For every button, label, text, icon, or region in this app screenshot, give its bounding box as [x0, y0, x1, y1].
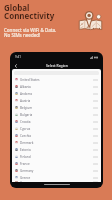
staticText: Andorra: [20, 92, 32, 96]
button[interactable]: Finland: [12, 153, 101, 160]
staticText: United States: [20, 78, 40, 82]
staticText: Denmark: [20, 141, 34, 145]
staticText: Croatia: [20, 120, 31, 124]
button[interactable]: Belgium: [12, 104, 101, 111]
staticText: Greece: [20, 176, 31, 180]
button[interactable]: Bulgaria: [12, 111, 101, 118]
button[interactable]: France: [12, 160, 101, 167]
staticText: Hungary: [20, 181, 33, 182]
staticText: Austria: [20, 99, 31, 103]
button[interactable]: Back: [12, 62, 19, 69]
staticText: Connect via WiFi & Data. No SIMs needed!: [4, 27, 57, 39]
button[interactable]: Croatia: [12, 118, 101, 125]
staticText: Albania: [20, 85, 31, 89]
staticText: Global Connectivity: [4, 2, 55, 21]
button[interactable]: Andorra: [12, 90, 101, 97]
button[interactable]: Germany: [12, 167, 101, 174]
button[interactable]: Cyprus: [12, 125, 101, 132]
button[interactable]: Estonia: [12, 146, 101, 153]
button[interactable]: Austria: [12, 97, 101, 104]
button[interactable]: Greece: [12, 174, 101, 181]
staticText: Finland: [20, 155, 31, 159]
staticText: Germany: [20, 169, 34, 173]
staticText: Belgium: [20, 106, 33, 110]
staticText: Cyprus: [20, 127, 31, 131]
staticText: France: [20, 162, 30, 166]
staticText: Czechia: [20, 134, 32, 138]
button[interactable]: Hungary: [12, 181, 101, 182]
button[interactable]: Denmark: [12, 139, 101, 146]
staticText: 9:41: [15, 55, 21, 59]
staticText: Estonia: [20, 148, 31, 152]
button[interactable]: Czechia: [12, 132, 101, 139]
button[interactable]: United States: [12, 76, 101, 83]
staticText: Bulgaria: [20, 113, 33, 117]
button[interactable]: Albania: [12, 83, 101, 90]
staticText: Select Region: [46, 63, 68, 68]
